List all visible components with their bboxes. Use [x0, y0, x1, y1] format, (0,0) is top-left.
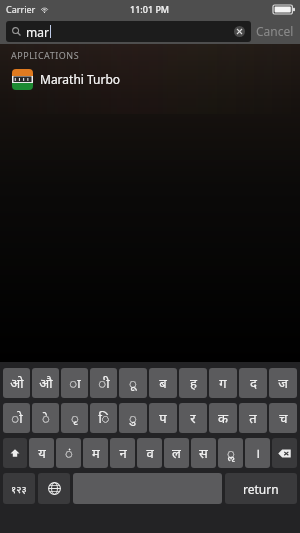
staticText: द	[250, 374, 257, 392]
button[interactable]: े	[32, 403, 59, 433]
button[interactable]: र	[179, 403, 207, 433]
staticText: ब	[159, 374, 167, 392]
staticText: Marathi Turbo	[40, 71, 121, 87]
button[interactable]: ृ	[61, 403, 88, 433]
button[interactable]: ॢ	[218, 438, 243, 468]
button[interactable]: Switch keyboard	[38, 473, 70, 504]
staticText: ं	[65, 444, 73, 462]
staticText: य	[38, 444, 46, 462]
staticText: APPLICATIONS	[11, 49, 80, 61]
button[interactable]: ो	[3, 403, 30, 433]
staticText: ज	[278, 374, 288, 392]
staticText: स	[199, 444, 208, 462]
staticText: औ	[39, 374, 53, 392]
staticText: ू	[129, 374, 137, 392]
button[interactable]: ।	[245, 438, 270, 468]
button[interactable]: ू	[119, 368, 147, 398]
button[interactable]: ल	[164, 438, 189, 468]
staticText: १२३	[11, 482, 27, 496]
staticText: म	[92, 444, 100, 462]
staticText: ल	[172, 444, 181, 462]
button[interactable]: ओ	[3, 368, 30, 398]
staticText: क	[218, 409, 228, 427]
button[interactable]: ु	[119, 403, 147, 433]
button[interactable]: Marathi Turbo	[0, 66, 300, 92]
staticText: mar	[26, 24, 49, 40]
button[interactable]: न	[110, 438, 135, 468]
staticText: ु	[129, 409, 137, 427]
button[interactable]: ह	[179, 368, 207, 398]
button[interactable]: Clear text	[234, 26, 245, 37]
staticText: व	[146, 444, 154, 462]
staticText: ह	[190, 374, 197, 392]
button[interactable]: म	[83, 438, 108, 468]
button[interactable]: १२३	[3, 473, 35, 504]
staticText: ।	[255, 444, 260, 462]
button[interactable]: त	[239, 403, 267, 433]
button[interactable]: Shift	[3, 438, 27, 468]
button[interactable]: Cancel	[256, 23, 294, 39]
button[interactable]: mar	[6, 21, 251, 42]
button[interactable]: Backspace	[272, 438, 297, 468]
button[interactable]: य	[29, 438, 54, 468]
button[interactable]: च	[269, 403, 297, 433]
button[interactable]: प	[149, 403, 177, 433]
staticText: ी	[98, 374, 110, 392]
staticText: ओ	[10, 374, 24, 392]
button[interactable]: ि	[90, 403, 117, 433]
button[interactable]: return	[225, 473, 297, 504]
staticText: ग	[219, 374, 227, 392]
button[interactable]: स	[191, 438, 216, 468]
staticText: च	[279, 409, 288, 427]
staticText: त	[249, 409, 257, 427]
button[interactable]: ज	[269, 368, 297, 398]
button[interactable]: ी	[90, 368, 117, 398]
button[interactable]: ग	[209, 368, 237, 398]
staticText: न	[119, 444, 127, 462]
staticText: 11:01 PM	[130, 3, 170, 15]
button[interactable]: ा	[61, 368, 88, 398]
staticText: ो	[11, 409, 23, 427]
staticText: ॢ	[227, 444, 235, 462]
staticText: े	[42, 409, 50, 427]
staticText: ि	[98, 409, 110, 427]
button[interactable]: व	[137, 438, 162, 468]
staticText: return	[243, 481, 279, 497]
staticText: Carrier	[6, 3, 36, 15]
button[interactable]: क	[209, 403, 237, 433]
button[interactable]: औ	[32, 368, 59, 398]
staticText: र	[190, 409, 196, 427]
staticText: प	[159, 409, 167, 427]
button[interactable]: ब	[149, 368, 177, 398]
button[interactable]: ं	[56, 438, 81, 468]
staticText: ा	[69, 374, 81, 392]
staticText: ृ	[71, 409, 79, 427]
button[interactable]: द	[239, 368, 267, 398]
staticText: Cancel	[256, 23, 294, 39]
